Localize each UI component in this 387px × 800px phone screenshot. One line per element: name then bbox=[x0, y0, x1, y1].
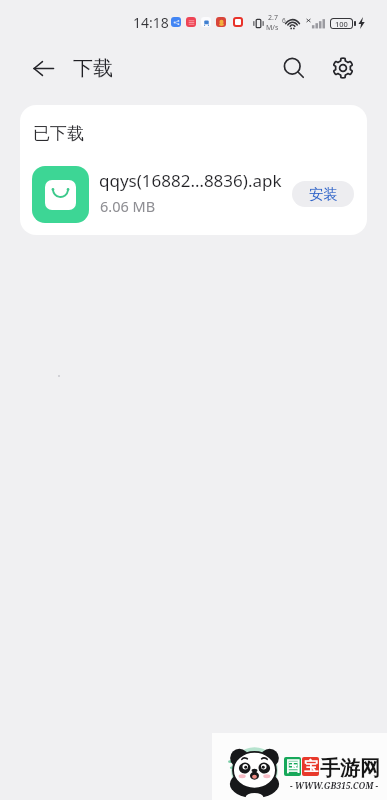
staticText: 已下载 bbox=[33, 123, 84, 144]
staticText: 2.7 bbox=[268, 13, 278, 23]
staticText: qqys(16882…8836).apk bbox=[99, 169, 282, 192]
staticText: 14:18 bbox=[133, 13, 169, 32]
button[interactable]: qqys(16882…8836).apk bbox=[20, 159, 367, 229]
staticText: - WWW.GB315.COM - bbox=[290, 780, 379, 792]
staticText: 手游网 bbox=[320, 756, 380, 781]
staticText: 6.06 MB bbox=[100, 196, 156, 216]
staticText: 安装 bbox=[309, 185, 338, 203]
button[interactable]: Back bbox=[27, 52, 59, 84]
button[interactable]: Search bbox=[278, 52, 310, 84]
button[interactable]: Settings bbox=[327, 52, 359, 84]
staticText: 宝 bbox=[304, 758, 318, 776]
staticText: 100 bbox=[335, 19, 348, 28]
staticText: M/s bbox=[266, 23, 279, 33]
button[interactable]: 安装 bbox=[292, 181, 354, 207]
staticText: 下载 bbox=[73, 56, 113, 81]
staticText: 国 bbox=[286, 758, 300, 776]
staticText: 6 bbox=[282, 16, 286, 25]
